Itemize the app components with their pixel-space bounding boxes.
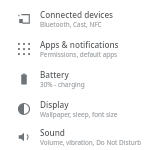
staticText: Display: [40, 99, 69, 110]
staticText: Bluetooth, Cast, NFC: [40, 20, 102, 29]
staticText: Battery: [40, 69, 69, 80]
staticText: Wallpaper, sleep, font size: [40, 110, 118, 119]
staticText: Apps & notifications: [40, 39, 119, 50]
button[interactable]: Apps & notifications: [0, 34, 150, 64]
button[interactable]: Connected devices: [0, 4, 150, 34]
staticText: Connected devices: [40, 9, 114, 20]
staticText: Volume, vibration, Do Not Disturb: [40, 138, 142, 147]
button[interactable]: Battery: [0, 64, 150, 94]
button[interactable]: Sound: [0, 124, 150, 150]
staticText: Sound: [40, 127, 65, 138]
staticText: Permissions, default apps: [40, 50, 118, 59]
button[interactable]: Display: [0, 94, 150, 124]
staticText: 30% - charging: [40, 80, 85, 89]
